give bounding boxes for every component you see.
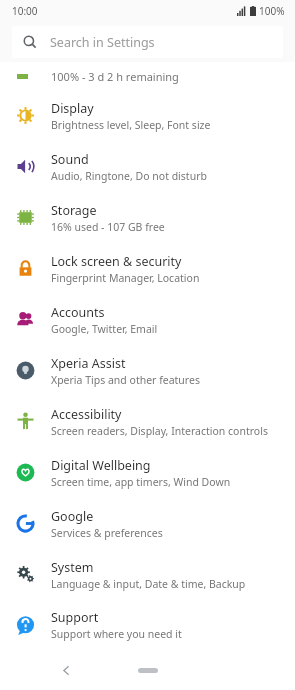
button[interactable]: Back: [52, 656, 80, 684]
staticText: Digital Wellbeing: [51, 457, 151, 474]
staticText: Google: [51, 508, 94, 525]
button[interactable]: 100% - 3 d 2 h remaining: [0, 62, 295, 90]
staticText: Lock screen & security: [51, 253, 182, 270]
button[interactable]: Display: [0, 90, 295, 141]
staticText: Xperia Assist: [51, 355, 126, 372]
staticText: Screen readers, Display, Interaction con…: [51, 424, 268, 438]
staticText: 100% - 3 d 2 h remaining: [51, 69, 179, 84]
button[interactable]: Accounts: [0, 294, 295, 345]
staticText: Search in Settings: [50, 34, 155, 51]
button[interactable]: Xperia Assist: [0, 345, 295, 396]
staticText: Support: [51, 609, 99, 626]
staticText: Accessibility: [51, 406, 122, 423]
staticText: Sound: [51, 151, 89, 168]
staticText: System: [51, 559, 94, 576]
button[interactable]: Accessibility: [0, 396, 295, 447]
staticText: Fingerprint Manager, Location: [51, 271, 200, 285]
button[interactable]: Search in Settings: [12, 26, 283, 58]
staticText: Storage: [51, 202, 97, 219]
staticText: 10:00: [12, 4, 38, 18]
staticText: Support where you need it: [51, 627, 182, 641]
button[interactable]: Storage: [0, 192, 295, 243]
staticText: Display: [51, 100, 94, 117]
staticText: Google, Twitter, Email: [51, 322, 158, 336]
button[interactable]: Home: [128, 660, 168, 680]
staticText: 16% used - 107 GB free: [51, 220, 165, 234]
staticText: Services & preferences: [51, 526, 163, 540]
button[interactable]: Support: [0, 600, 295, 650]
staticText: Brightness level, Sleep, Font size: [51, 118, 211, 132]
button[interactable]: Digital Wellbeing: [0, 447, 295, 498]
staticText: 100%: [259, 4, 285, 18]
button[interactable]: Lock screen & security: [0, 243, 295, 294]
staticText: Language & input, Date & time, Backup: [51, 577, 246, 591]
staticText: Xperia Tips and other features: [51, 373, 200, 387]
staticText: Screen time, app timers, Wind Down: [51, 475, 231, 489]
staticText: Accounts: [51, 304, 105, 321]
button[interactable]: Google: [0, 498, 295, 549]
button[interactable]: System: [0, 549, 295, 600]
staticText: Audio, Ringtone, Do not disturb: [51, 169, 207, 183]
button[interactable]: Sound: [0, 141, 295, 192]
